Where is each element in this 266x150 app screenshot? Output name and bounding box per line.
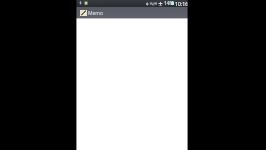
staticText: 10:16: [175, 0, 189, 7]
button[interactable]: [76, 19, 188, 150]
staticText: 14N: [164, 0, 173, 6]
staticText: Memo: [88, 10, 104, 17]
button[interactable]: Memo app icon: [76, 7, 188, 18]
other: Memo app icon: [80, 10, 87, 16]
